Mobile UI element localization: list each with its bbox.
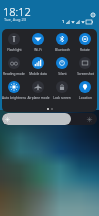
staticText: Mobile data: [29, 72, 47, 76]
button[interactable]: Wi-Fi: [26, 33, 50, 52]
staticText: Wi-Fi: [34, 48, 42, 52]
staticText: Reading mode: [3, 72, 25, 76]
staticText: Location: [79, 96, 92, 100]
button[interactable]: Lock screen: [50, 81, 74, 100]
button[interactable]: Auto brightness: [2, 81, 26, 100]
staticText: 18:12: [3, 4, 31, 19]
button[interactable]: Silent: [50, 57, 74, 76]
button[interactable]: Bluetooth: [50, 33, 74, 52]
staticText: Airplane mode: [27, 96, 50, 100]
staticText: Bluetooth: [55, 48, 70, 52]
button[interactable]: Airplane mode: [26, 81, 50, 100]
staticText: Auto brightness: [2, 96, 26, 100]
button[interactable]: Settings: [90, 12, 96, 18]
staticText: Tue, Aug 23: [4, 17, 26, 22]
button[interactable]: Rotate: [73, 33, 97, 52]
button[interactable]: Location: [73, 81, 97, 100]
button[interactable]: Reading mode: [2, 57, 26, 76]
button[interactable]: Brightness: [2, 113, 97, 125]
staticText: 1: [62, 19, 65, 24]
button[interactable]: Flashlight: [2, 33, 26, 52]
staticText: Silent: [58, 72, 67, 76]
button[interactable]: Screenshot: [73, 57, 97, 76]
staticText: Flashlight: [7, 48, 22, 52]
staticText: Lock screen: [53, 96, 71, 100]
staticText: Screenshot: [77, 72, 94, 76]
button[interactable]: Mobile data: [26, 57, 50, 76]
staticText: Rotate: [80, 48, 90, 52]
